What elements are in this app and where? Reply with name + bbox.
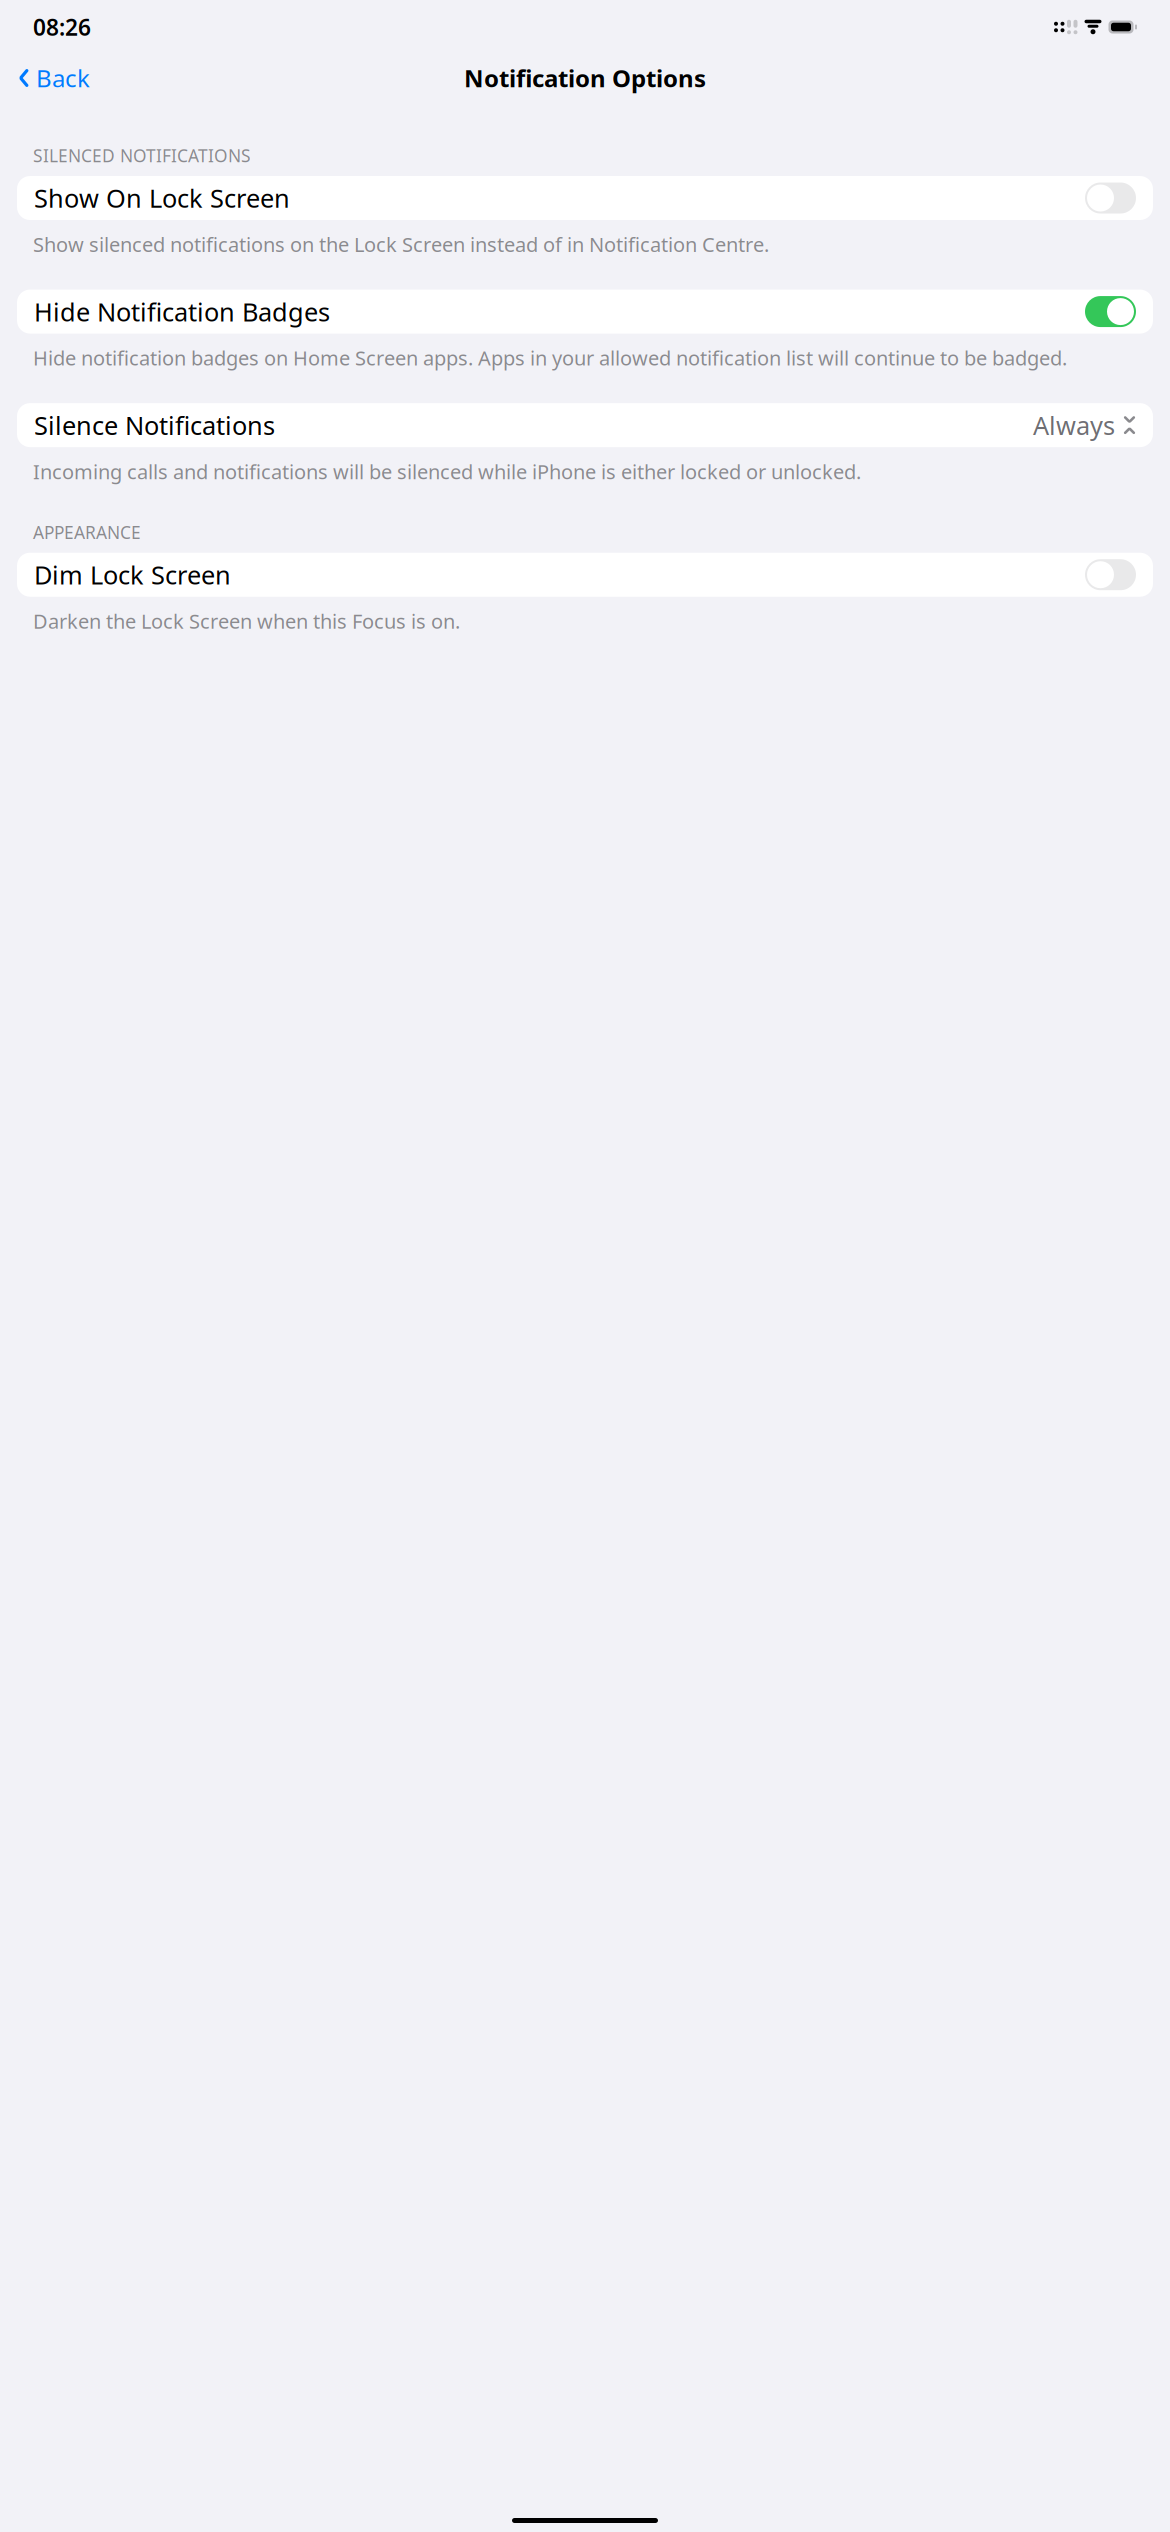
- staticText: APPEARANCE: [33, 521, 141, 544]
- staticText: Show On Lock Screen: [34, 181, 290, 215]
- staticText: Back: [36, 62, 90, 94]
- staticText: 08:26: [33, 12, 91, 42]
- staticText: Hide Notification Badges: [34, 295, 330, 328]
- staticText: Silence Notifications: [34, 408, 275, 442]
- button[interactable]: Silence Notifications: [17, 403, 1153, 447]
- staticText: Always: [1033, 408, 1115, 442]
- staticText: Show silenced notifications on the Lock …: [33, 231, 769, 258]
- button[interactable]: Show On Lock Screen: [17, 176, 1153, 220]
- staticText: SILENCED NOTIFICATIONS: [33, 144, 251, 167]
- staticText: Darken the Lock Screen when this Focus i…: [33, 608, 460, 634]
- staticText: Dim Lock Screen: [34, 558, 231, 591]
- staticText: Incoming calls and notifications will be…: [33, 458, 861, 485]
- staticText: Hide notification badges on Home Screen …: [33, 345, 1067, 371]
- button[interactable]: Dim Lock Screen: [17, 553, 1153, 597]
- button[interactable]: Back: [12, 56, 96, 100]
- staticText: Notification Options: [464, 62, 706, 94]
- button[interactable]: Hide Notification Badges: [17, 290, 1153, 334]
